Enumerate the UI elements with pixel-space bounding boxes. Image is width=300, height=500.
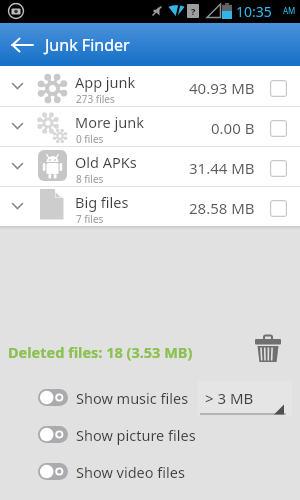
staticText: Junk Finder xyxy=(45,34,130,56)
button[interactable] xyxy=(270,200,287,217)
button[interactable]: App junk xyxy=(0,66,300,106)
staticText: Show music files xyxy=(76,388,189,408)
staticText: Big files xyxy=(75,192,129,212)
button[interactable] xyxy=(38,426,68,443)
button[interactable] xyxy=(252,332,284,364)
staticText: Deleted files: 18 (3.53 MB) xyxy=(8,342,193,362)
staticText: 273 files xyxy=(76,92,115,106)
button[interactable] xyxy=(38,463,68,480)
staticText: Show video files xyxy=(76,462,185,482)
staticText: AM xyxy=(283,5,296,16)
button[interactable]: Big files xyxy=(0,186,300,226)
staticText: 0.00 B xyxy=(211,118,255,138)
staticText: ? xyxy=(191,5,196,17)
staticText: 40.93 MB xyxy=(189,78,255,98)
button[interactable]: Show music files xyxy=(30,384,220,411)
button[interactable]: > 3 MB xyxy=(198,381,292,415)
button[interactable]: More junk xyxy=(0,106,300,146)
staticText: 10:35 xyxy=(236,2,272,21)
button[interactable] xyxy=(270,80,287,97)
staticText: > 3 MB xyxy=(205,388,254,408)
staticText: App junk xyxy=(75,72,136,92)
staticText: 7 files xyxy=(76,212,104,226)
button[interactable] xyxy=(270,160,287,177)
button[interactable] xyxy=(38,389,68,406)
staticText: 28.58 MB xyxy=(189,198,255,218)
staticText: More junk xyxy=(75,112,144,132)
button[interactable] xyxy=(270,120,287,137)
button[interactable]: Show picture files xyxy=(30,421,220,448)
staticText: 0 files xyxy=(76,132,104,146)
staticText: Show picture files xyxy=(76,425,196,445)
staticText: 8 files xyxy=(76,172,104,186)
staticText: 31.44 MB xyxy=(189,158,255,178)
button[interactable]: Old APKs xyxy=(0,146,300,186)
staticText: Old APKs xyxy=(75,152,137,172)
button[interactable] xyxy=(4,27,42,63)
button[interactable]: Show video files xyxy=(30,458,220,485)
